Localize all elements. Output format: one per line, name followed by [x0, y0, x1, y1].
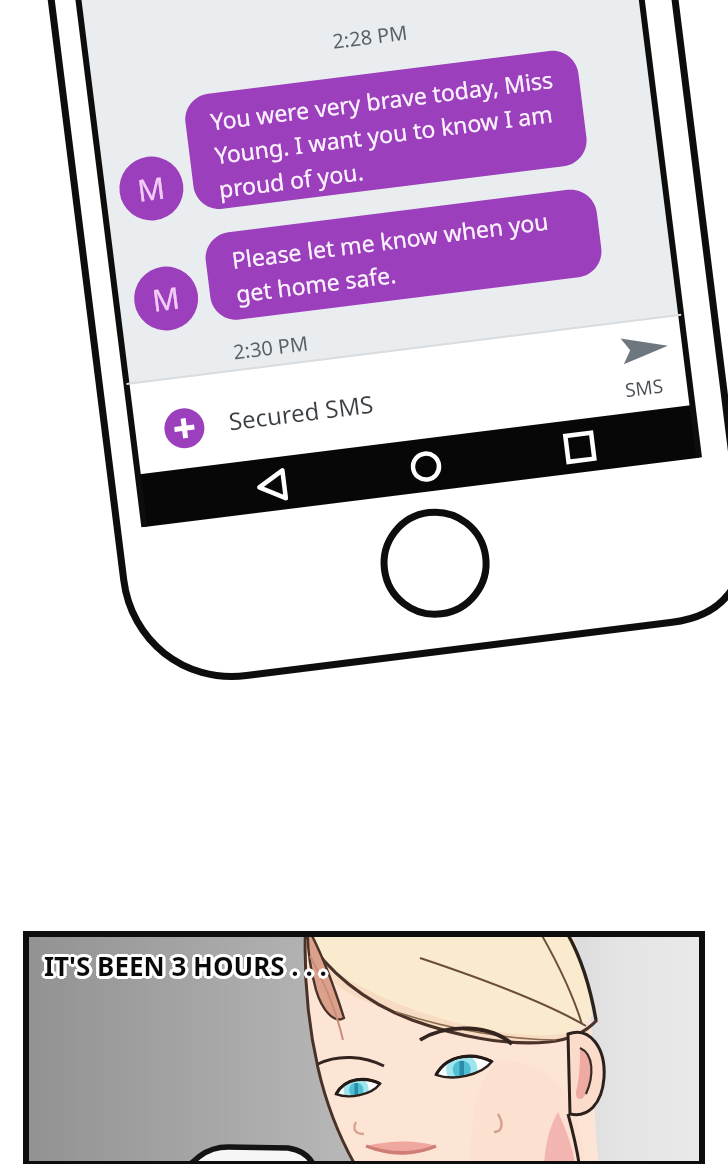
button[interactable]: Contact avatar M: [134, 268, 200, 334]
button[interactable]: Message: You were very brave today, Miss…: [190, 55, 590, 215]
button[interactable]: Secured SMS: [212, 396, 432, 440]
button[interactable]: Home: [392, 433, 460, 501]
button[interactable]: Send SMS: [612, 320, 680, 394]
button[interactable]: Message: Please let me know when you get…: [214, 205, 606, 317]
button[interactable]: Contact avatar M: [120, 158, 186, 224]
button[interactable]: Home button: [388, 516, 484, 612]
button[interactable]: Add attachment: [156, 400, 212, 456]
button[interactable]: Recent apps: [546, 413, 614, 481]
button[interactable]: Comic panel: IT'S BEEN 3 HOURS: [26, 931, 702, 1164]
button[interactable]: Back: [236, 452, 308, 520]
